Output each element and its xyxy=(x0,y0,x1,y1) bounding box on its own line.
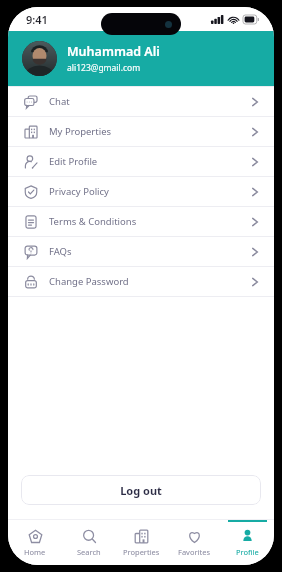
staticText: Favorites xyxy=(178,547,211,557)
staticText: Muhammad Ali xyxy=(67,43,160,60)
staticText: Edit Profile xyxy=(49,155,98,168)
button[interactable]: Home xyxy=(8,520,62,565)
button[interactable]: My Properties xyxy=(8,117,274,146)
button[interactable]: Properties xyxy=(115,520,168,565)
button[interactable]: Change Password xyxy=(8,267,274,296)
staticText: Chat xyxy=(49,95,70,108)
staticText: My Properties xyxy=(49,125,112,138)
staticText: Log out xyxy=(120,483,162,498)
staticText: Privacy Policy xyxy=(49,185,109,198)
button[interactable]: FAQs xyxy=(8,237,274,266)
button[interactable]: Search xyxy=(62,520,115,565)
button[interactable]: Edit Profile xyxy=(8,147,274,176)
button[interactable]: Favorites xyxy=(168,520,221,565)
staticText: 9:41 xyxy=(26,12,48,27)
staticText: Terms & Conditions xyxy=(49,215,137,228)
staticText: Profile xyxy=(236,547,259,557)
button[interactable]: Terms & Conditions xyxy=(8,207,274,236)
staticText: FAQs xyxy=(49,245,72,258)
staticText: Properties xyxy=(123,547,160,557)
button[interactable]: Log out xyxy=(21,475,261,505)
staticText: Home xyxy=(24,547,46,557)
button[interactable]: Chat xyxy=(8,87,274,116)
button[interactable]: Privacy Policy xyxy=(8,177,274,206)
staticText: Search xyxy=(77,547,101,557)
staticText: Change Password xyxy=(49,275,129,288)
staticText: ali123@gmail.com xyxy=(67,62,141,74)
button[interactable]: Profile xyxy=(221,520,274,565)
